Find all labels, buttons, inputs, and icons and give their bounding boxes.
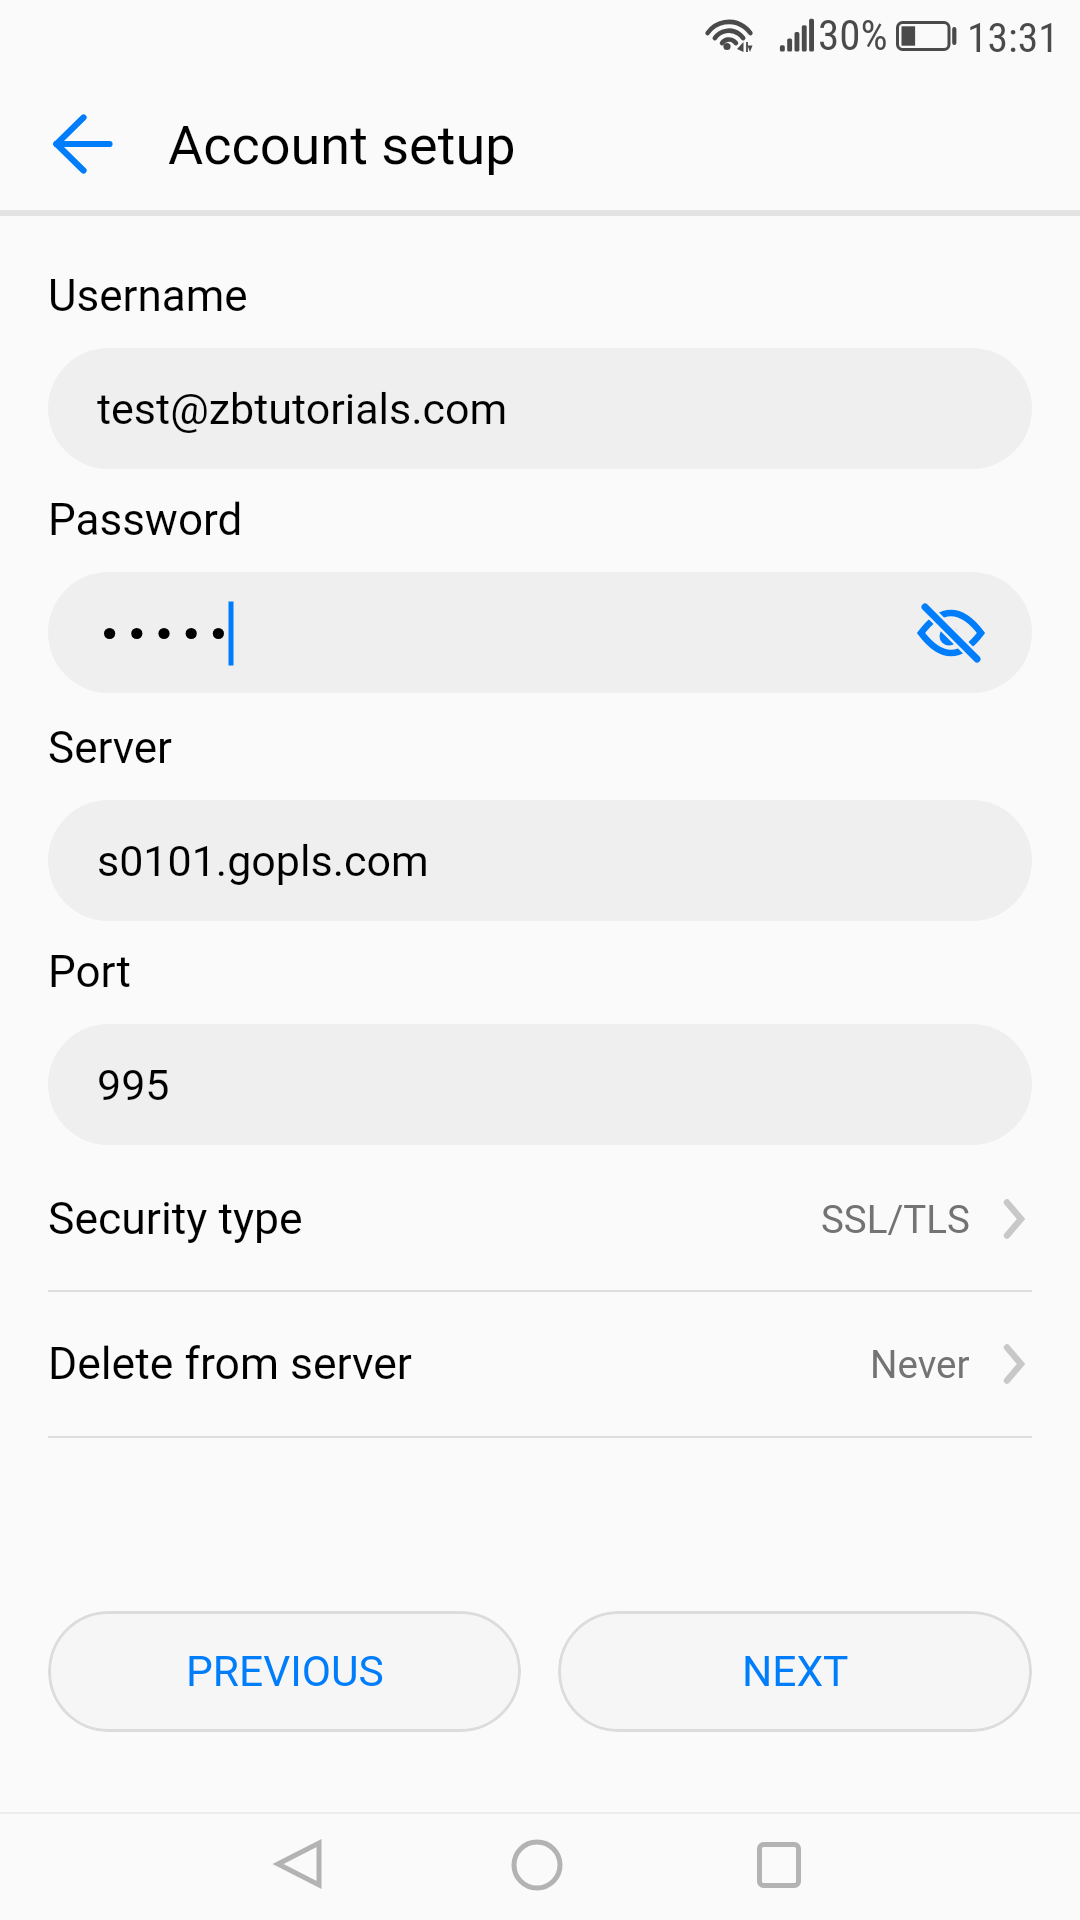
button[interactable]: Back: [275, 1840, 323, 1888]
button[interactable]: NEXT: [558, 1611, 1032, 1732]
button[interactable]: PREVIOUS: [48, 1611, 521, 1732]
staticText: SSL/TLS: [821, 1197, 970, 1242]
button[interactable]: Recents: [757, 1842, 801, 1888]
staticText: Delete from server: [48, 1338, 412, 1390]
button[interactable]: Delete from server: [0, 1292, 1080, 1436]
staticText: Username: [48, 270, 248, 322]
button[interactable]: Show password: [915, 597, 987, 669]
staticText: PREVIOUS: [186, 1647, 384, 1697]
staticText: Account setup: [168, 114, 516, 177]
button[interactable]: test@zbtutorials.com: [48, 348, 1032, 469]
staticText: Never: [870, 1342, 970, 1387]
staticText: s0101.gopls.com: [97, 836, 429, 886]
staticText: Server: [48, 722, 173, 774]
button[interactable]: s0101.gopls.com: [48, 800, 1032, 921]
staticText: Port: [48, 946, 131, 998]
button[interactable]: 995: [48, 1024, 1032, 1145]
button[interactable]: Home: [511, 1839, 563, 1891]
staticText: Password: [48, 494, 243, 546]
button[interactable]: Security type: [0, 1148, 1080, 1290]
staticText: 995: [97, 1060, 170, 1110]
staticText: 13:31: [967, 13, 1059, 62]
staticText: test@zbtutorials.com: [97, 384, 508, 434]
staticText: Security type: [48, 1193, 303, 1245]
button[interactable]: Back: [53, 113, 113, 175]
staticText: NEXT: [742, 1647, 849, 1697]
button[interactable]: Show password: [48, 572, 1032, 693]
staticText: 30%: [818, 10, 888, 60]
